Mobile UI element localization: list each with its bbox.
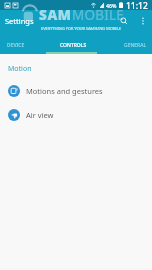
staticText: MOBILE <box>72 6 124 24</box>
staticText: Settings <box>5 16 34 26</box>
button[interactable]: CONTROLS <box>50 34 96 57</box>
staticText: CONTROLS <box>60 42 87 49</box>
staticText: Motions and gestures <box>26 86 103 96</box>
button[interactable]: DEVICE <box>0 34 39 57</box>
button[interactable]: Air view <box>0 103 152 127</box>
button[interactable]: More options <box>134 12 152 30</box>
staticText: 46% <box>106 2 117 9</box>
button[interactable]: Motions and gestures <box>0 79 152 103</box>
staticText: 11:12 <box>126 0 148 10</box>
button[interactable]: GENERAL <box>112 34 152 57</box>
staticText: EVERYTHING FOR YOUR SAMSUNG MOBILE <box>41 26 121 32</box>
staticText: SAM <box>39 6 72 24</box>
button[interactable]: Search <box>114 11 134 31</box>
staticText: Motion <box>8 64 32 74</box>
staticText: DEVICE <box>7 42 25 49</box>
staticText: Air view <box>26 110 54 120</box>
staticText: GENERAL <box>124 42 147 49</box>
